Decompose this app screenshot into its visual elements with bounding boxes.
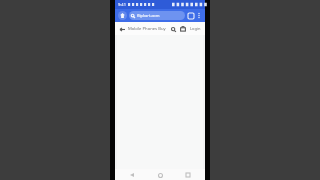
staticText: Login xyxy=(190,26,201,31)
button[interactable]: flipkart.com xyxy=(129,11,185,20)
button[interactable]: Back xyxy=(127,170,137,180)
button[interactable]: Cart xyxy=(179,25,187,33)
button[interactable]: Tabs xyxy=(187,12,194,19)
button[interactable]: Home xyxy=(118,11,127,20)
staticText: flipkart.com xyxy=(137,13,160,18)
staticText: Mobile Phones Buy Onl xyxy=(128,26,168,32)
button[interactable]: Home xyxy=(155,170,165,180)
button[interactable]: Back xyxy=(118,25,126,33)
staticText: 9:41 xyxy=(118,2,126,7)
button[interactable]: Login xyxy=(189,25,202,32)
button[interactable]: Recent apps xyxy=(183,170,193,180)
button[interactable]: More options xyxy=(195,12,202,19)
button[interactable]: Search xyxy=(169,25,177,33)
